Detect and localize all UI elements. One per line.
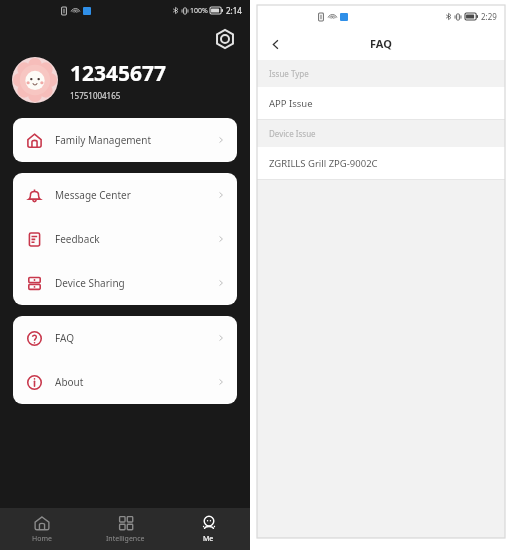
button[interactable]: APP Issue: [257, 87, 505, 119]
staticText: 12345677: [70, 59, 167, 88]
button[interactable]: Me: [167, 508, 250, 550]
staticText: Family Management: [55, 133, 152, 147]
button[interactable]: FAQ: [13, 316, 237, 360]
staticText: Device Issue: [269, 128, 316, 139]
staticText: FAQ: [55, 331, 74, 345]
staticText: 2:29: [481, 11, 497, 22]
staticText: FAQ: [370, 36, 392, 51]
button[interactable]: Device Sharing: [13, 261, 237, 305]
staticText: Home: [32, 534, 52, 544]
staticText: Issue Type: [269, 68, 309, 79]
staticText: 2:14: [226, 5, 242, 16]
button[interactable]: Family Management: [13, 118, 237, 162]
button[interactable]: Settings: [212, 26, 238, 52]
button[interactable]: Home: [0, 508, 84, 550]
button[interactable]: Intelligence: [84, 508, 167, 550]
staticText: APP Issue: [269, 97, 313, 110]
staticText: 100%: [190, 6, 208, 16]
button[interactable]: Feedback: [13, 217, 237, 261]
staticText: ZGRILLS Grill ZPG-9002C: [269, 157, 378, 170]
staticText: Message Center: [55, 188, 131, 202]
button[interactable]: Message Center: [13, 173, 237, 217]
staticText: Feedback: [55, 232, 100, 246]
staticText: 15751004165: [70, 90, 121, 101]
button[interactable]: About: [13, 360, 237, 404]
staticText: Intelligence: [106, 534, 145, 544]
button[interactable]: Back: [263, 32, 287, 56]
staticText: Me: [203, 534, 214, 544]
staticText: Device Sharing: [55, 276, 125, 290]
staticText: About: [55, 375, 84, 389]
button[interactable]: ZGRILLS Grill ZPG-9002C: [257, 147, 505, 179]
